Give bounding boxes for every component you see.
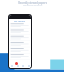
button[interactable]: Tab 3 <box>20 63 25 68</box>
button[interactable]: Tab 1 <box>9 63 14 68</box>
button[interactable]: Tab 2 <box>15 63 20 68</box>
staticText: pick up where you left off <box>23 4 42 6</box>
button[interactable]: Tab 4 <box>26 63 31 68</box>
staticText: My Library <box>14 20 26 23</box>
button[interactable]: My Library <box>9 19 31 23</box>
button[interactable]: Add paper <box>15 62 18 65</box>
staticText: Recently viewed papers <box>18 1 47 4</box>
